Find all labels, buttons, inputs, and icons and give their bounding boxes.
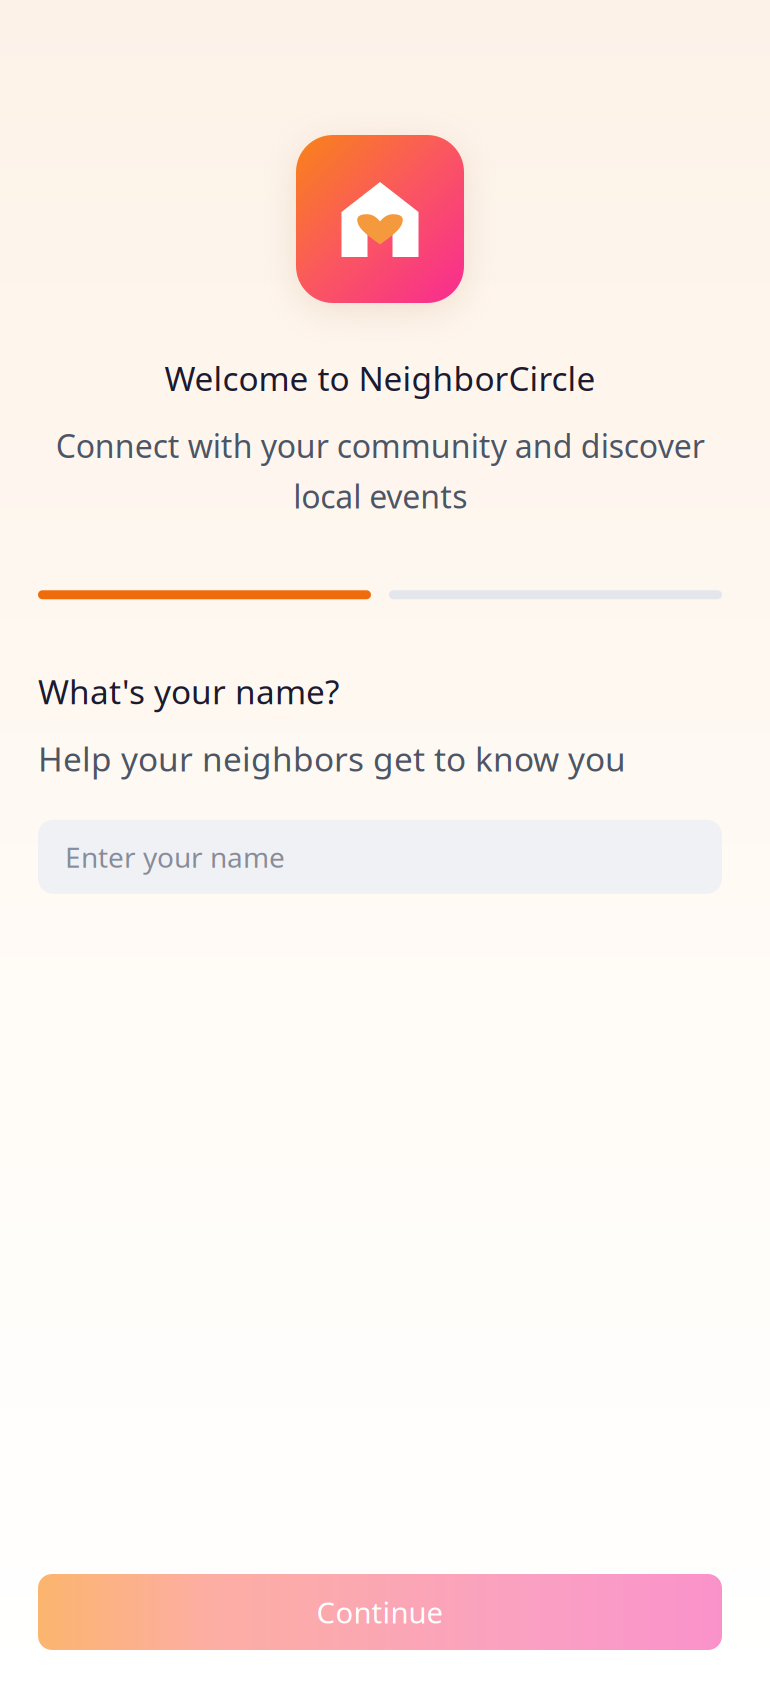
- staticText: What's your name?: [38, 669, 339, 714]
- staticText: Continue: [316, 1592, 443, 1631]
- button[interactable]: Continue: [38, 1574, 722, 1650]
- staticText: Welcome to NeighborCircle: [164, 356, 595, 400]
- button[interactable]: Enter your name: [38, 820, 722, 894]
- staticText: Connect with your community and discover…: [55, 424, 704, 517]
- staticText: Help your neighbors get to know you: [38, 736, 626, 781]
- staticText: Enter your name: [65, 838, 285, 875]
